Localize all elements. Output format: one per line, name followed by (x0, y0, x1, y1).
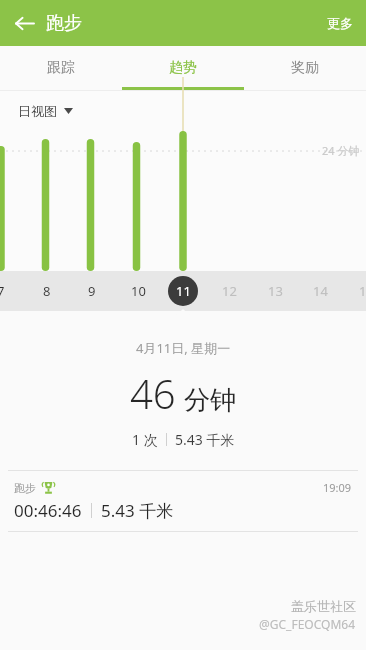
staticText: 14 (313, 282, 328, 300)
button[interactable]: 更多 (314, 3, 366, 43)
staticText: 8 (43, 282, 51, 300)
staticText: 10 (131, 282, 146, 300)
staticText: 趋势 (169, 59, 197, 77)
staticText: 12 (222, 282, 237, 300)
button[interactable]: 10 (122, 275, 154, 307)
button[interactable]: 9 (76, 275, 108, 307)
staticText: 盖乐世社区 (291, 598, 356, 614)
staticText: 更多 (327, 15, 353, 31)
staticText: 1 次 (132, 430, 158, 449)
staticText: 19:09 (323, 480, 352, 495)
staticText: 跑步 (14, 481, 36, 495)
button[interactable]: Back (6, 5, 42, 41)
staticText: 24 分钟 (322, 143, 360, 158)
button[interactable]: 奖励 (244, 46, 366, 90)
staticText: 13 (268, 282, 283, 300)
button[interactable]: 12 (213, 275, 245, 307)
button[interactable]: 11 (167, 275, 199, 307)
staticText: 9 (88, 282, 96, 300)
staticText: 00:46:46 (14, 499, 82, 522)
staticText: 跑步 (46, 12, 82, 35)
staticText: 跟踪 (47, 59, 75, 77)
staticText: 5.43 千米 (101, 499, 174, 522)
staticText: @GC_FEOCQM64 (259, 616, 356, 632)
button[interactable]: 15 (350, 275, 366, 307)
staticText: 7 (0, 282, 5, 300)
staticText: 奖励 (291, 59, 319, 77)
staticText: 4月11日, 星期一 (136, 339, 231, 357)
button[interactable]: 13 (259, 275, 291, 307)
button[interactable]: 8 (31, 275, 63, 307)
staticText: 11 (176, 282, 191, 300)
button[interactable]: 跑步 (0, 471, 366, 531)
staticText: 46 (130, 366, 176, 420)
button[interactable]: 跟踪 (0, 46, 122, 90)
button[interactable]: 7 (0, 275, 17, 307)
staticText: 15 (359, 282, 366, 300)
staticText: 5.43 千米 (175, 430, 235, 449)
staticText: 分钟 (184, 384, 236, 417)
button[interactable]: 日视图 (14, 99, 77, 123)
button[interactable]: 趋势 (122, 46, 244, 90)
button[interactable]: 14 (304, 275, 336, 307)
staticText: 日视图 (18, 103, 57, 119)
